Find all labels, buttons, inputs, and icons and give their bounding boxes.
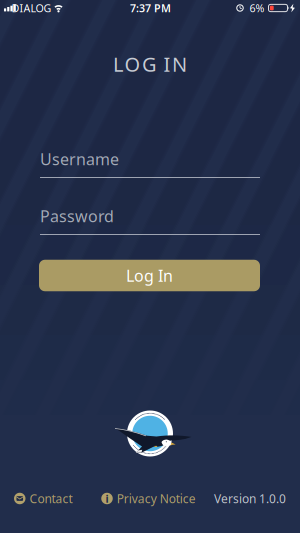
staticText: 6% — [249, 1, 264, 15]
button[interactable]: Password — [40, 206, 260, 238]
staticText: Log In — [126, 265, 173, 286]
staticText: L — [113, 51, 123, 77]
staticText: G — [142, 51, 157, 77]
staticText: N — [172, 51, 187, 77]
button[interactable]: Username — [40, 149, 260, 181]
staticText: Password — [40, 205, 114, 227]
staticText: 7:37 PM — [130, 1, 171, 15]
staticText: Version 1.0.0 — [214, 490, 286, 506]
staticText: Username — [40, 148, 119, 170]
button[interactable]: Contact — [14, 490, 72, 506]
staticText: Contact — [29, 490, 72, 506]
staticText: Privacy Notice — [117, 490, 196, 506]
button[interactable]: i — [101, 490, 196, 506]
staticText: I — [163, 51, 170, 77]
staticText: i — [105, 491, 108, 506]
button[interactable]: Log In — [39, 260, 260, 291]
staticText: O — [124, 51, 140, 77]
staticText: DIALOG — [11, 1, 51, 15]
